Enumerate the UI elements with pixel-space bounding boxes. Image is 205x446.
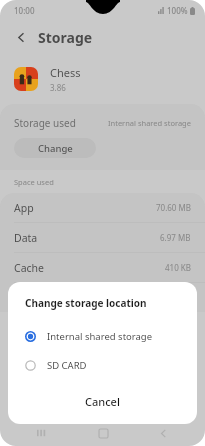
button[interactable]: App [0,193,205,222]
staticText: Data [14,231,38,245]
staticText: 3.86 [50,82,66,93]
staticText: 6.97 MB [160,232,191,243]
button[interactable]: Change [14,138,96,158]
button[interactable]: Data [0,222,205,252]
staticText: Chess [50,65,81,80]
staticText: 10:00 [14,5,35,16]
staticText: Change storage location [25,296,147,310]
staticText: 100% [167,5,188,16]
button[interactable]: Internal shared storage [8,322,197,351]
staticText: 410 KB [165,262,191,273]
staticText: Change [38,142,73,155]
button[interactable]: Total [0,282,205,312]
button[interactable]: Back [145,420,181,446]
staticText: Internal shared storage [108,118,191,128]
staticText: App [14,201,34,215]
button[interactable]: Recents [24,420,60,446]
staticText: Cache [14,261,44,275]
button[interactable]: Cancel [8,388,197,416]
staticText: Cancel [85,394,120,409]
staticText: Space used [14,177,54,187]
button[interactable]: Home [85,420,121,446]
staticText: Storage used [14,116,76,130]
staticText: Internal shared storage [47,330,153,343]
button[interactable]: Back [10,26,32,48]
staticText: 70.60 MB [156,202,191,213]
button[interactable]: Cache [0,252,205,282]
button[interactable]: SD CARD [8,351,197,380]
staticText: Storage [38,28,93,47]
staticText: Total [14,291,38,305]
staticText: SD CARD [47,359,87,372]
